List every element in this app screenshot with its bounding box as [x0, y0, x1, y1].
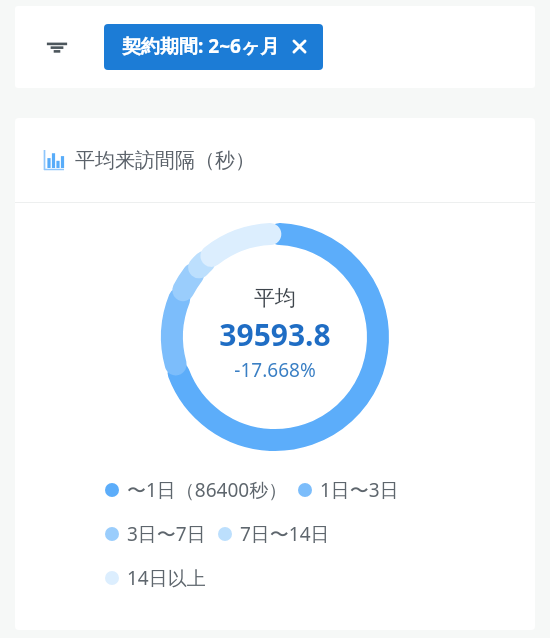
staticText: 平均来訪間隔（秒） [75, 148, 255, 173]
staticText: 39593.8 [219, 314, 331, 355]
button[interactable]: 契約期間: 2~6ヶ月 [104, 24, 323, 70]
button[interactable]: 〜1日（86400秒） [105, 475, 288, 505]
button[interactable]: 3日〜7日 [105, 519, 206, 549]
staticText: 契約期間: 2~6ヶ月 [122, 33, 280, 59]
staticText: 平均 [254, 285, 296, 311]
staticText: 〜1日（86400秒） [127, 477, 288, 503]
staticText: 3日〜7日 [127, 521, 206, 547]
button[interactable]: 7日〜14日 [218, 519, 330, 549]
staticText: 14日以上 [127, 565, 206, 591]
button[interactable]: Filter [40, 30, 74, 64]
button[interactable]: 1日〜3日 [298, 475, 399, 505]
button[interactable]: 14日以上 [105, 563, 206, 593]
staticText: -17.668% [234, 357, 316, 383]
staticText: 1日〜3日 [320, 477, 399, 503]
staticText: 7日〜14日 [240, 521, 330, 547]
